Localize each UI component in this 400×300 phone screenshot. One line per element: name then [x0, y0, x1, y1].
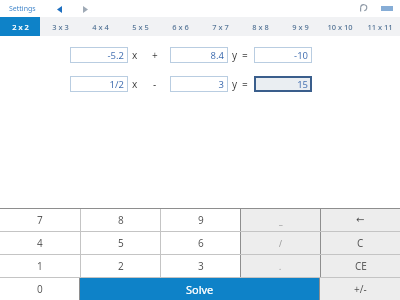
staticText: 3	[218, 78, 224, 91]
button[interactable]: 5	[81, 232, 160, 254]
staticText: -5.2	[107, 49, 124, 62]
staticText: +/-	[354, 282, 367, 296]
button[interactable]: C	[321, 232, 400, 254]
button[interactable]: 4	[0, 232, 80, 254]
staticText: 5	[118, 236, 124, 250]
button[interactable]: 9	[161, 209, 240, 231]
staticText: _	[279, 215, 283, 226]
staticText: .	[279, 261, 282, 272]
staticText: 2	[118, 259, 124, 273]
button[interactable]: 6 x 6	[160, 17, 200, 36]
button[interactable]: Previous equation	[51, 1, 67, 17]
button[interactable]: 8 x 8	[240, 17, 280, 36]
button[interactable]: -5.2	[70, 47, 128, 63]
button[interactable]: Solve	[80, 278, 319, 300]
button[interactable]: 3	[161, 255, 240, 277]
button[interactable]: Settings	[6, 2, 39, 16]
button[interactable]: -10	[254, 47, 312, 63]
button[interactable]: 1	[0, 255, 80, 277]
staticText: y	[232, 48, 238, 62]
staticText: 6 x 6	[172, 22, 189, 32]
button[interactable]: /	[241, 232, 320, 254]
button[interactable]: 7	[0, 209, 80, 231]
staticText: Solve	[186, 282, 214, 297]
button[interactable]: 9 x 9	[280, 17, 320, 36]
staticText: 6	[198, 236, 204, 250]
staticText: 1/2	[109, 78, 124, 91]
button[interactable]: Undo	[354, 0, 372, 17]
staticText: 3	[198, 259, 204, 273]
button[interactable]: 15	[254, 76, 312, 92]
staticText: x	[132, 48, 138, 62]
staticText: y	[232, 77, 238, 91]
staticText: 7	[37, 213, 43, 227]
staticText: 8 x 8	[252, 22, 269, 32]
staticText: 8.4	[210, 49, 224, 62]
button[interactable]: 10 x 10	[320, 17, 360, 36]
button[interactable]: 3	[170, 76, 228, 92]
button[interactable]: Next equation	[77, 1, 93, 17]
staticText: 11 x 11	[367, 22, 393, 32]
staticText: 8	[118, 213, 124, 227]
button[interactable]: 6	[161, 232, 240, 254]
staticText: +	[152, 48, 158, 62]
button[interactable]: 5 x 5	[120, 17, 160, 36]
button[interactable]: 7 x 7	[200, 17, 240, 36]
staticText: Settings	[9, 4, 36, 14]
button[interactable]: 4 x 4	[80, 17, 120, 36]
button[interactable]: 2	[81, 255, 160, 277]
staticText: 0	[37, 282, 43, 296]
button[interactable]: 0	[0, 278, 79, 300]
staticText: x	[132, 77, 138, 91]
staticText: /	[279, 238, 282, 249]
staticText: ←	[356, 214, 365, 226]
button[interactable]: 2 x 2	[0, 17, 40, 36]
staticText: 9	[198, 213, 204, 227]
button[interactable]: ←	[321, 209, 400, 231]
button[interactable]: 11 x 11	[360, 17, 400, 36]
staticText: -10	[294, 49, 308, 62]
button[interactable]: 8.4	[170, 47, 228, 63]
staticText: 4 x 4	[92, 22, 109, 32]
staticText: 7 x 7	[212, 22, 229, 32]
button[interactable]: Menu	[378, 0, 396, 17]
button[interactable]: CE	[321, 255, 400, 277]
staticText: 1	[37, 259, 43, 273]
staticText: 3 x 3	[52, 22, 69, 32]
button[interactable]: 1/2	[70, 76, 128, 92]
staticText: 5 x 5	[132, 22, 149, 32]
button[interactable]: 8	[81, 209, 160, 231]
staticText: 2 x 2	[12, 22, 29, 32]
staticText: 10 x 10	[327, 22, 353, 32]
staticText: =	[242, 77, 248, 91]
button[interactable]: 3 x 3	[40, 17, 80, 36]
staticText: 4	[37, 236, 43, 250]
staticText: -	[153, 77, 157, 91]
staticText: 15	[297, 78, 308, 91]
staticText: =	[242, 48, 248, 62]
staticText: C	[357, 236, 364, 250]
button[interactable]: +/-	[320, 278, 400, 300]
staticText: 9 x 9	[292, 22, 309, 32]
staticText: CE	[355, 259, 367, 273]
